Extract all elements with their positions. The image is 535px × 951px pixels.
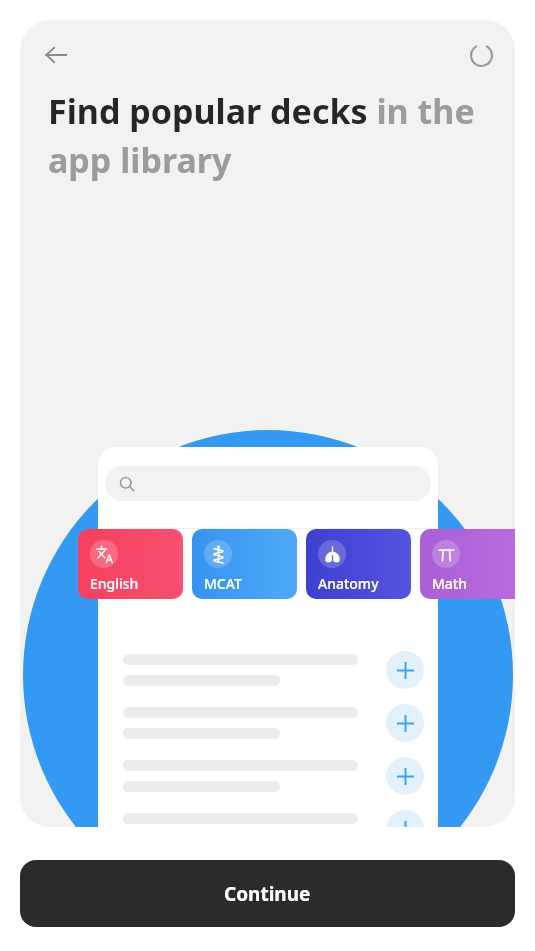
button[interactable]: Continue [20, 860, 515, 927]
staticText: Continue [224, 881, 311, 907]
staticText: Math [432, 574, 467, 593]
button[interactable]: Math [420, 529, 515, 599]
button[interactable]: Add deck [98, 643, 438, 696]
button[interactable]: Add deck [386, 810, 424, 827]
button[interactable]: Search [105, 466, 431, 501]
staticText: Anatomy [318, 574, 379, 593]
button[interactable]: Progress [461, 35, 501, 75]
staticText: English [90, 574, 139, 593]
staticText: MCAT [204, 574, 242, 593]
button[interactable]: Add deck [386, 704, 424, 742]
button[interactable]: Back [34, 33, 78, 77]
button[interactable]: Add deck [98, 696, 438, 749]
button[interactable]: Add deck [386, 757, 424, 795]
button[interactable]: Add deck [98, 749, 438, 802]
button[interactable]: Add deck [98, 802, 438, 827]
staticText: Find popular decks in the app library [48, 88, 491, 183]
button[interactable]: MCAT [192, 529, 297, 599]
button[interactable]: Anatomy [306, 529, 411, 599]
button[interactable]: Add deck [386, 651, 424, 689]
button[interactable]: English [78, 529, 183, 599]
